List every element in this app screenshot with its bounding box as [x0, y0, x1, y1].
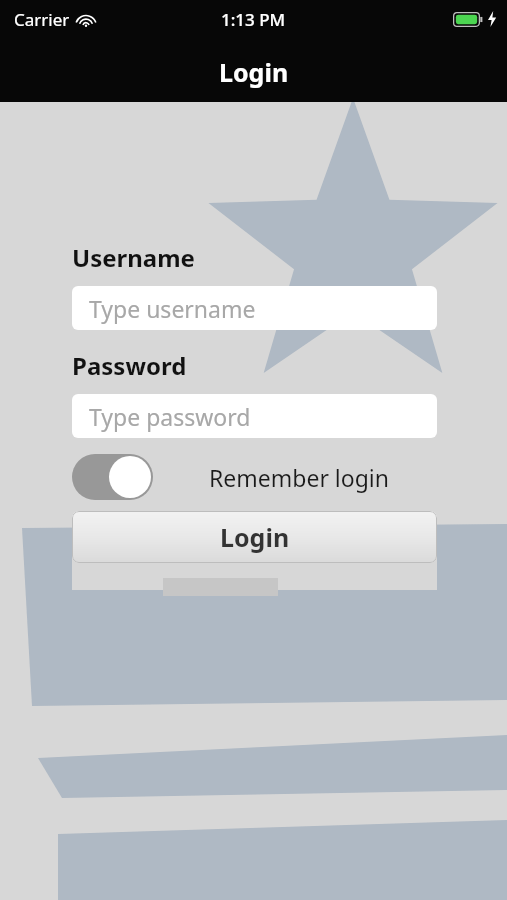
staticText: Remember login	[209, 462, 389, 493]
button[interactable]: Type password	[72, 394, 437, 438]
button[interactable]: Remember login toggle	[72, 454, 153, 500]
staticText: Type password	[89, 401, 251, 432]
button[interactable]: Login	[72, 511, 437, 563]
staticText: 1:13 PM	[221, 8, 286, 31]
staticText: Password	[72, 349, 187, 382]
staticText: Type username	[89, 293, 256, 324]
staticText: Carrier	[14, 8, 70, 31]
staticText: Login	[220, 520, 290, 554]
staticText: Username	[72, 241, 195, 274]
staticText: Login	[219, 55, 289, 89]
button[interactable]: Type username	[72, 286, 437, 330]
